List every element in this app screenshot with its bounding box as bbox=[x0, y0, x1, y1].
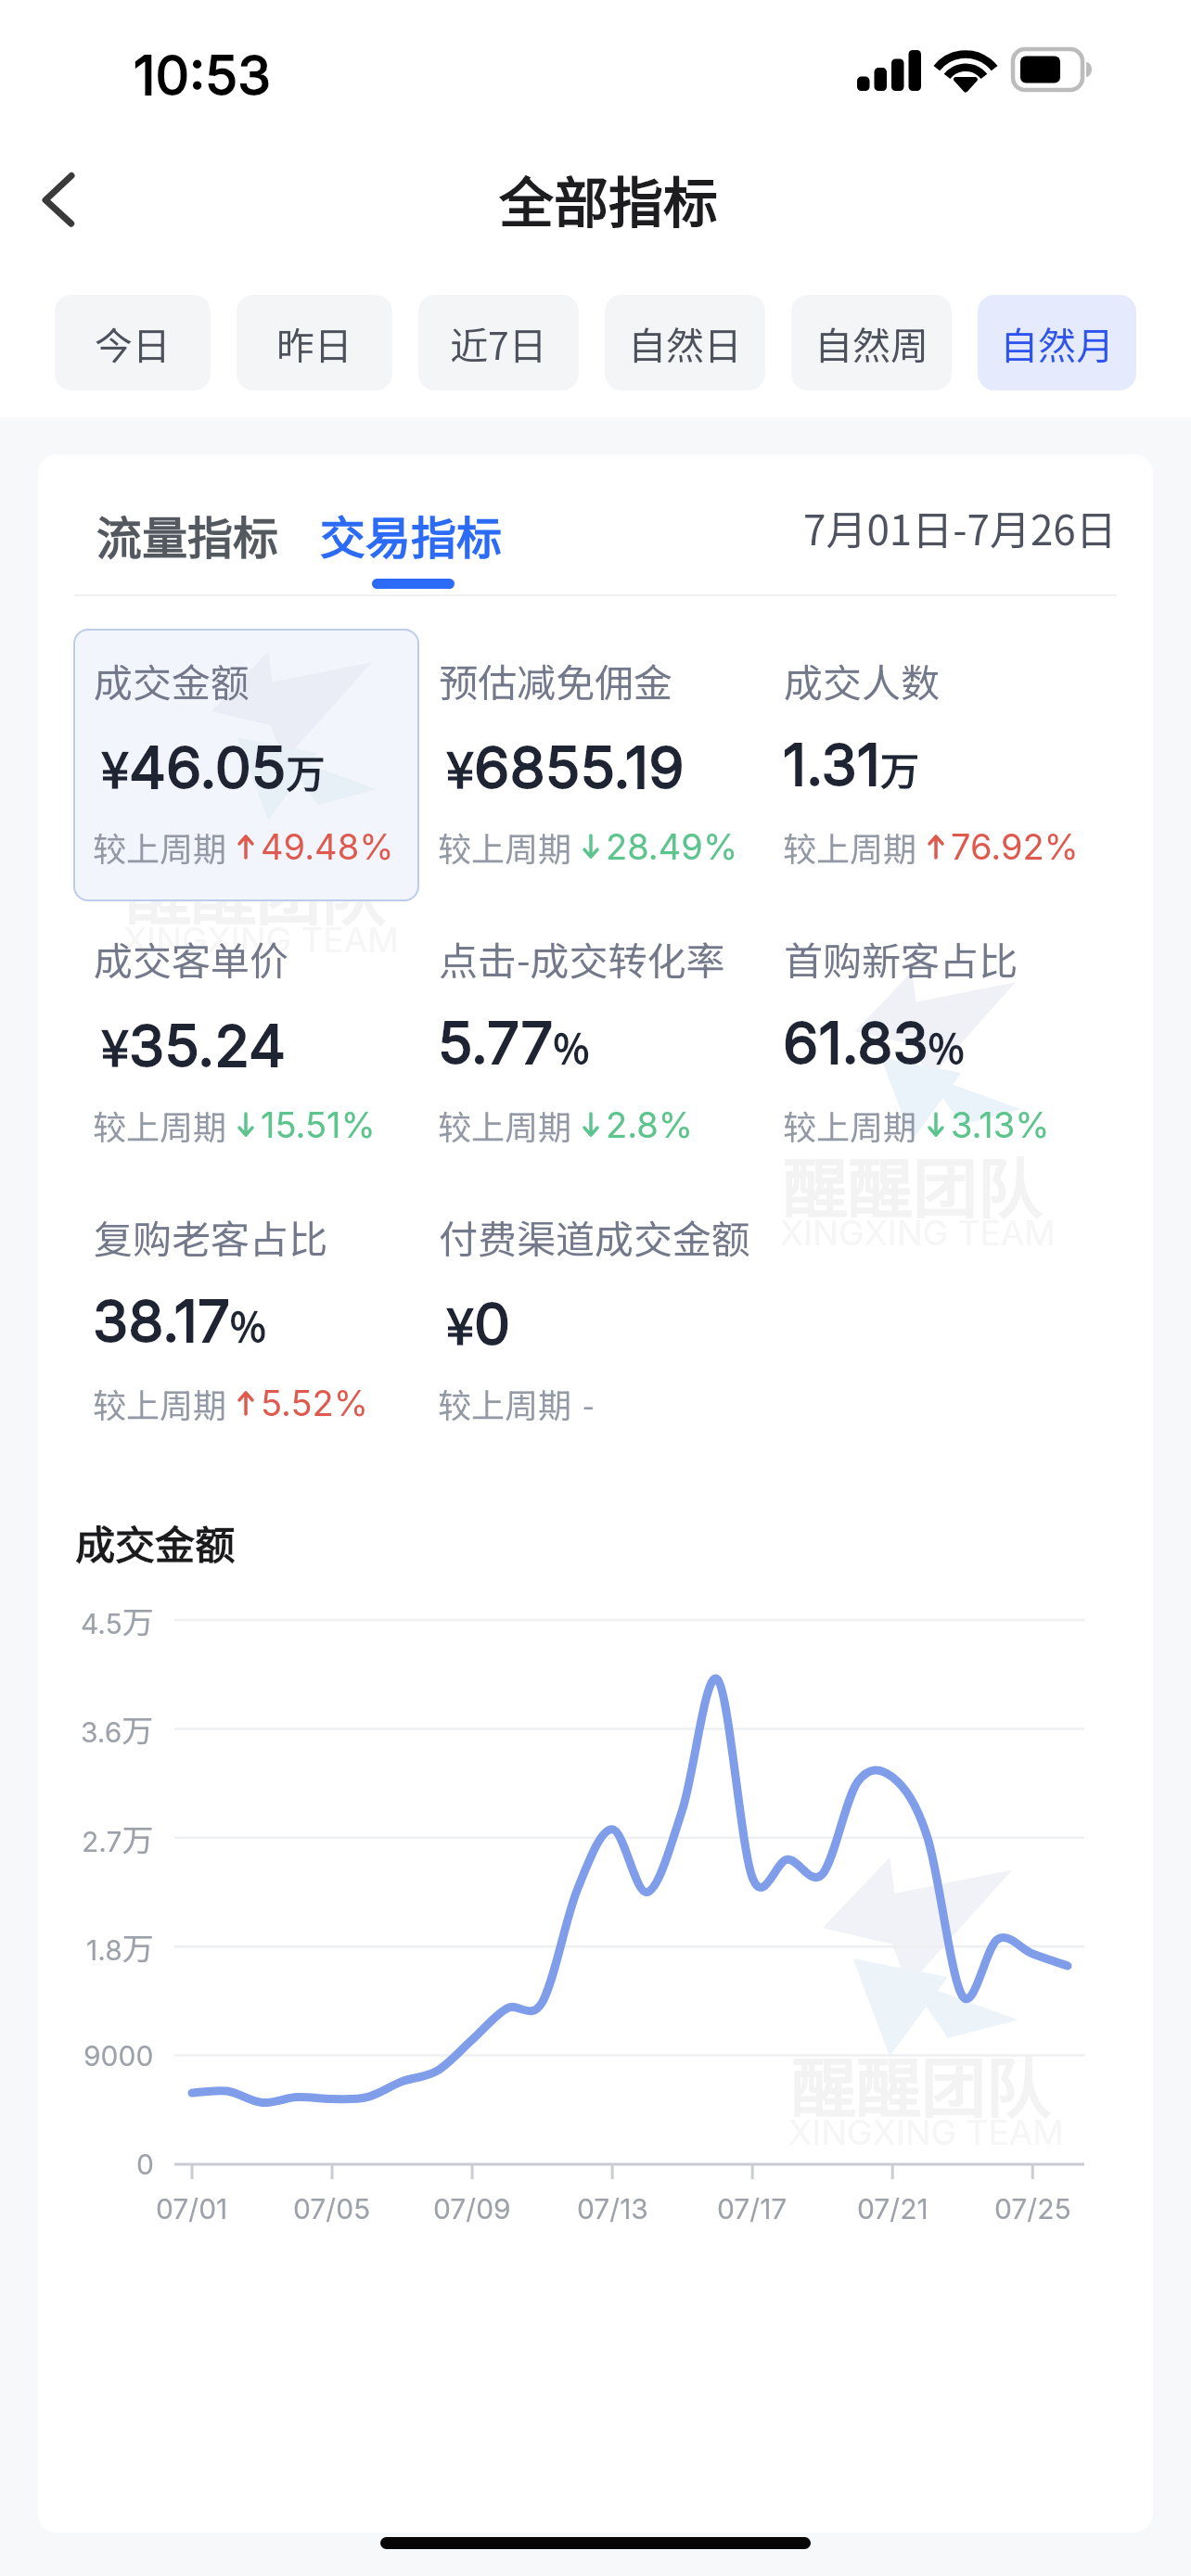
staticText: 醒醒团队 bbox=[126, 844, 386, 937]
staticText: 07/05 bbox=[293, 2192, 371, 2225]
staticText: 醒醒团队 bbox=[783, 1137, 1043, 1231]
staticText: 较上周期 bbox=[783, 1101, 917, 1149]
staticText: 点击-成交转化率 bbox=[439, 930, 725, 987]
staticText: 较上周期 bbox=[438, 1379, 572, 1427]
staticText: 较上周期 bbox=[93, 1101, 227, 1149]
button[interactable]: Back bbox=[15, 155, 104, 244]
staticText: 成交客单价 bbox=[94, 930, 289, 987]
staticText: ¥0 bbox=[446, 1286, 511, 1358]
staticText: 61.83% bbox=[783, 1008, 965, 1078]
button[interactable]: 今日 bbox=[55, 295, 211, 390]
staticText: 1.8万 bbox=[86, 1924, 154, 1970]
staticText: 5.52% bbox=[261, 1382, 369, 1424]
button[interactable]: 自然月 bbox=[978, 295, 1136, 390]
button[interactable]: 近7日 bbox=[418, 295, 579, 390]
staticText: 预估减免佣金 bbox=[439, 652, 673, 708]
staticText: 成交金额 bbox=[75, 1513, 235, 1571]
staticText: 昨日 bbox=[276, 315, 352, 370]
staticText: 10:53 bbox=[134, 43, 271, 108]
button[interactable]: 自然日 bbox=[605, 295, 765, 390]
staticText: 9000 bbox=[83, 2039, 154, 2072]
staticText: 全部指标 bbox=[499, 159, 719, 238]
staticText: 07/17 bbox=[717, 2192, 788, 2225]
staticText: 复购老客占比 bbox=[94, 1208, 328, 1265]
staticText: 07/09 bbox=[433, 2192, 511, 2225]
staticText: 38.17% bbox=[93, 1286, 266, 1356]
staticText: 流量指标 bbox=[96, 502, 279, 567]
staticText: 成交金额 bbox=[94, 652, 250, 708]
staticText: 2.7万 bbox=[82, 1816, 154, 1861]
staticText: 3.13% bbox=[951, 1103, 1050, 1146]
staticText: 自然月 bbox=[1000, 315, 1114, 370]
staticText: ¥6855.19 bbox=[446, 730, 685, 802]
staticText: 醒醒团队 bbox=[791, 2036, 1051, 2130]
button[interactable]: 昨日 bbox=[237, 295, 392, 390]
staticText: 07/01 bbox=[156, 2192, 228, 2225]
staticText: 07/21 bbox=[857, 2192, 928, 2225]
staticText: 2.8% bbox=[606, 1103, 694, 1146]
staticText: 07/25 bbox=[994, 2192, 1071, 2225]
button[interactable]: 交易指标 bbox=[320, 502, 503, 567]
staticText: 15.51% bbox=[261, 1103, 376, 1146]
staticText: 07/13 bbox=[577, 2192, 648, 2225]
staticText: 较上周期 bbox=[438, 1101, 572, 1149]
staticText: 自然日 bbox=[628, 315, 742, 370]
staticText: 5.77% bbox=[438, 1008, 590, 1078]
staticText: 首购新客占比 bbox=[784, 930, 1018, 987]
staticText: 成交人数 bbox=[784, 652, 941, 708]
staticText: 较上周期 bbox=[783, 823, 917, 871]
staticText: 1.31万 bbox=[783, 730, 919, 799]
staticText: 28.49% bbox=[606, 825, 738, 868]
staticText: 3.6万 bbox=[81, 1706, 154, 1752]
staticText: XINGXING TEAM bbox=[780, 1212, 1056, 1254]
staticText: 今日 bbox=[95, 315, 171, 370]
staticText: 0 bbox=[136, 2148, 154, 2181]
staticText: - bbox=[583, 1379, 595, 1427]
staticText: 4.5万 bbox=[81, 1598, 154, 1643]
staticText: 7月01日-7月26日 bbox=[803, 498, 1117, 557]
staticText: XINGXING TEAM bbox=[123, 919, 399, 961]
staticText: 交易指标 bbox=[320, 502, 503, 567]
staticText: 较上周期 bbox=[93, 823, 227, 871]
staticText: XINGXING TEAM bbox=[788, 2111, 1064, 2153]
staticText: 76.92% bbox=[951, 825, 1079, 868]
staticText: 较上周期 bbox=[438, 823, 572, 871]
staticText: ¥46.05万 bbox=[101, 730, 326, 802]
button[interactable]: 流量指标 bbox=[96, 502, 279, 567]
staticText: 49.48% bbox=[261, 825, 394, 868]
staticText: 付费渠道成交金额 bbox=[439, 1208, 751, 1265]
staticText: 较上周期 bbox=[93, 1379, 227, 1427]
staticText: ¥35.24 bbox=[101, 1008, 287, 1080]
staticText: 自然周 bbox=[814, 315, 928, 370]
button[interactable]: 自然周 bbox=[791, 295, 952, 390]
staticText: 近7日 bbox=[450, 315, 547, 370]
button[interactable] bbox=[73, 629, 419, 901]
